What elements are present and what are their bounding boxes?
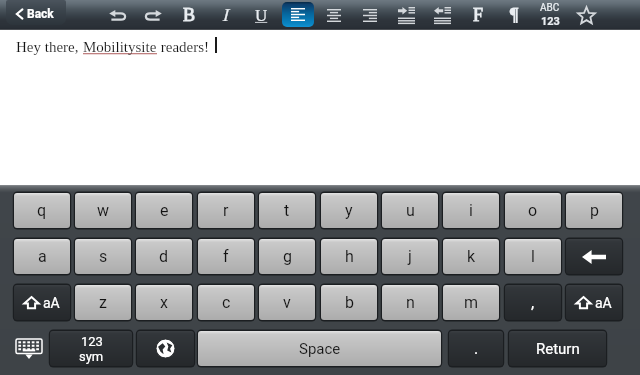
button[interactable]: Align center: [317, 1, 351, 29]
button[interactable]: g: [259, 239, 315, 274]
staticText: x: [160, 293, 168, 312]
button[interactable]: s: [75, 239, 131, 274]
button[interactable]: ,: [505, 285, 561, 320]
button[interactable]: Space: [198, 331, 441, 366]
button[interactable]: 123 sym: [50, 331, 132, 366]
button[interactable]: U: [244, 1, 278, 29]
button[interactable]: Decrease indent: [425, 1, 459, 29]
button[interactable]: l: [505, 239, 561, 274]
staticText: Hey there,: [16, 39, 83, 56]
button[interactable]: Change language: [137, 331, 194, 366]
button[interactable]: Return: [509, 331, 606, 366]
button[interactable]: k: [443, 239, 499, 274]
staticText: Mobilitysite: [83, 39, 157, 56]
staticText: ,: [531, 293, 535, 312]
staticText: u: [406, 201, 415, 220]
button[interactable]: Align left: [282, 2, 314, 27]
button[interactable]: Align right: [353, 1, 387, 29]
button[interactable]: Favourite: [569, 1, 603, 29]
button[interactable]: j: [382, 239, 438, 274]
staticText: c: [222, 293, 231, 312]
staticText: aA: [43, 295, 60, 311]
button[interactable]: b: [321, 285, 377, 320]
button[interactable]: f: [198, 239, 254, 274]
staticText: sym: [79, 349, 104, 364]
staticText: 123: [81, 334, 103, 349]
button[interactable]: u: [382, 193, 438, 228]
staticText: h: [345, 247, 354, 266]
staticText: a: [38, 247, 47, 266]
button[interactable]: .: [449, 331, 503, 366]
button[interactable]: q: [14, 193, 70, 228]
button[interactable]: d: [136, 239, 192, 274]
button[interactable]: e: [136, 193, 192, 228]
button[interactable]: t: [259, 193, 315, 228]
staticText: l: [531, 247, 535, 266]
button[interactable]: I: [208, 1, 242, 29]
staticText: i: [469, 201, 473, 220]
button[interactable]: B: [172, 1, 206, 29]
staticText: d: [159, 247, 169, 266]
button[interactable]: Shift: [14, 285, 70, 320]
staticText: 123: [541, 15, 560, 28]
staticText: readers!: [157, 39, 210, 56]
button[interactable]: w: [75, 193, 131, 228]
staticText: e: [160, 201, 169, 220]
button[interactable]: p: [566, 193, 622, 228]
button[interactable]: Symbols: [533, 1, 567, 29]
staticText: r: [223, 201, 229, 220]
staticText: k: [467, 247, 476, 266]
staticText: m: [464, 293, 479, 312]
staticText: o: [528, 201, 538, 220]
staticText: B: [183, 5, 196, 25]
staticText: Return: [536, 340, 580, 358]
button[interactable]: Shift: [566, 285, 622, 320]
staticText: w: [97, 201, 110, 220]
staticText: n: [406, 293, 415, 312]
button[interactable]: z: [75, 285, 131, 320]
button[interactable]: Backspace: [566, 239, 622, 274]
button[interactable]: n: [382, 285, 438, 320]
button[interactable]: x: [136, 285, 192, 320]
staticText: ABC: [540, 2, 560, 14]
button[interactable]: Hide keyboard: [12, 331, 46, 366]
button[interactable]: Back: [6, 0, 66, 25]
staticText: g: [283, 247, 292, 266]
staticText: q: [37, 201, 47, 220]
button[interactable]: r: [198, 193, 254, 228]
staticText: y: [345, 201, 353, 220]
button[interactable]: i: [443, 193, 499, 228]
staticText: z: [99, 293, 107, 312]
staticText: f: [223, 247, 229, 266]
button[interactable]: ¶: [497, 1, 531, 29]
staticText: F: [473, 5, 484, 25]
staticText: ¶: [510, 5, 519, 25]
button[interactable]: y: [321, 193, 377, 228]
staticText: U: [255, 6, 268, 25]
staticText: aA: [595, 295, 612, 311]
button[interactable]: Undo: [100, 1, 134, 29]
button[interactable]: h: [321, 239, 377, 274]
button[interactable]: Increase indent: [389, 1, 423, 29]
staticText: I: [222, 5, 228, 25]
staticText: t: [284, 201, 290, 220]
staticText: s: [99, 247, 108, 266]
button[interactable]: c: [198, 285, 254, 320]
staticText: b: [345, 293, 354, 312]
button[interactable]: v: [259, 285, 315, 320]
button[interactable]: m: [443, 285, 499, 320]
staticText: j: [408, 247, 412, 266]
staticText: .: [474, 339, 479, 358]
staticText: Space: [299, 340, 341, 358]
staticText: v: [283, 293, 291, 312]
button[interactable]: F: [461, 1, 495, 29]
staticText: Back: [27, 7, 54, 21]
staticText: p: [590, 201, 599, 220]
button[interactable]: a: [14, 239, 70, 274]
button[interactable]: Redo: [136, 1, 170, 29]
button[interactable]: o: [505, 193, 561, 228]
